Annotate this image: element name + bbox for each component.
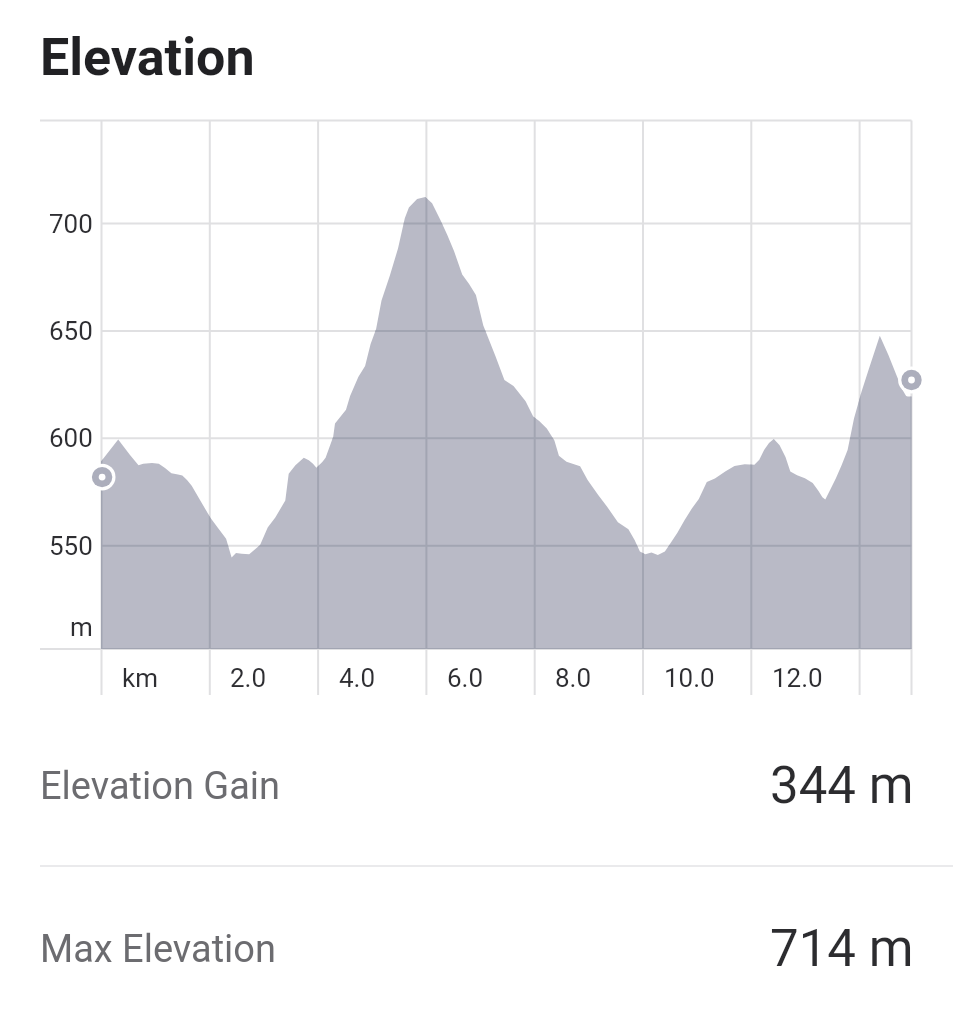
staticText: 650 (49, 316, 93, 346)
staticText: 4.0 (339, 663, 376, 693)
staticText: km (122, 663, 158, 693)
other: Elevation profile chart (0, 0, 953, 1024)
staticText: Elevation Gain (40, 764, 281, 809)
button[interactable]: Max Elevation (0, 903, 953, 1023)
staticText: Elevation (40, 27, 255, 88)
staticText: 714 m (770, 919, 914, 979)
staticText: 8.0 (555, 663, 592, 693)
staticText: 2.0 (230, 663, 267, 693)
button[interactable]: Elevation Gain (0, 740, 953, 860)
staticText: 10.0 (664, 663, 715, 693)
staticText: m (70, 612, 93, 642)
staticText: 700 (49, 209, 93, 239)
staticText: 550 (49, 531, 93, 561)
staticText: 600 (49, 423, 93, 453)
staticText: 6.0 (447, 663, 484, 693)
staticText: 12.0 (772, 663, 823, 693)
staticText: Max Elevation (40, 927, 276, 972)
staticText: 344 m (770, 756, 914, 816)
